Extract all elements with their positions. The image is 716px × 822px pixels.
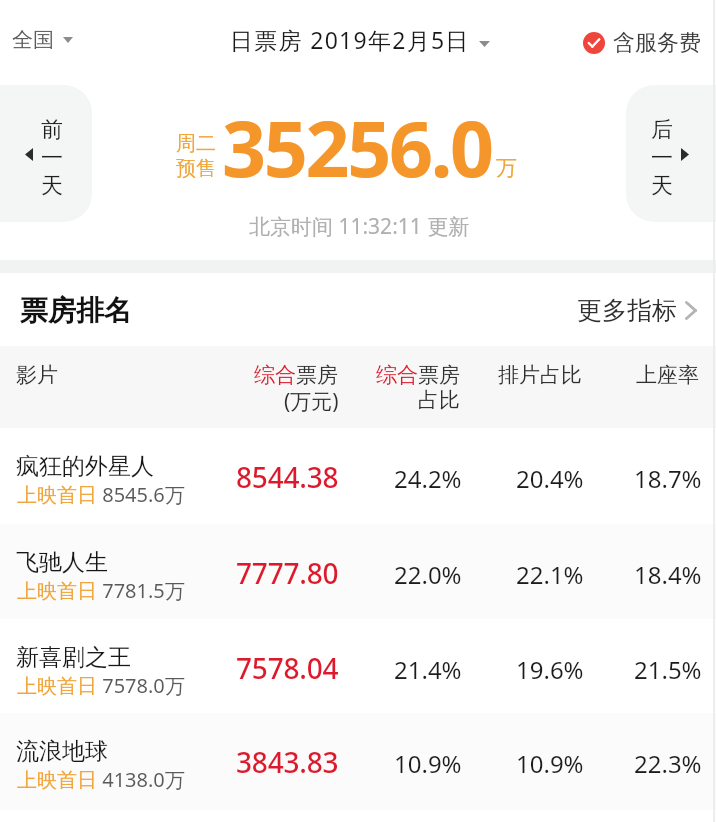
staticText: 天: [651, 172, 673, 200]
staticText: 22.1%: [516, 558, 584, 591]
staticText: 10.9%: [394, 747, 462, 780]
button[interactable]: 更多指标: [565, 285, 709, 336]
staticText: 上映首日 7578.0万: [17, 672, 185, 699]
staticText: 日票房 2019年2月5日: [230, 24, 470, 55]
staticText: 18.7%: [634, 462, 702, 495]
staticText: 7777.80: [236, 554, 339, 592]
staticText: 24.2%: [394, 462, 462, 495]
staticText: 22.3%: [634, 747, 702, 780]
staticText: 3843.83: [236, 743, 339, 781]
staticText: 前: [41, 116, 63, 144]
button[interactable]: 全国: [0, 0, 83, 74]
staticText: 10.9%: [516, 747, 584, 780]
staticText: (万元): [284, 387, 339, 416]
staticText: 后: [651, 116, 673, 144]
staticText: 周二: [176, 131, 216, 156]
staticText: 21.4%: [394, 653, 462, 686]
staticText: 19.6%: [516, 653, 584, 686]
staticText: 22.0%: [394, 558, 462, 591]
button[interactable]: 疯狂的外星人: [0, 428, 716, 524]
staticText: 疯狂的外星人: [16, 452, 154, 481]
staticText: 21.5%: [634, 653, 702, 686]
staticText: 上映首日 8545.6万: [17, 481, 185, 508]
staticText: 预售: [176, 156, 216, 181]
staticText: 排片占比: [498, 362, 582, 388]
button[interactable]: 票房排名: [7, 284, 145, 337]
button[interactable]: 含服务费: [571, 17, 713, 69]
button[interactable]: 流浪地球: [0, 713, 716, 811]
staticText: 天: [41, 172, 63, 200]
button[interactable]: 日票房 2019年2月5日: [218, 12, 502, 67]
button[interactable]: 飞驰人生: [0, 524, 716, 619]
staticText: 上映首日 7781.5万: [17, 577, 185, 604]
staticText: 35256.0: [222, 95, 492, 200]
staticText: 北京时间 11:32:11 更新: [249, 212, 470, 241]
staticText: 含服务费: [613, 29, 701, 57]
staticText: 8544.38: [236, 458, 339, 496]
staticText: 万: [496, 155, 517, 181]
staticText: 上映首日 4138.0万: [17, 766, 185, 793]
staticText: 流浪地球: [16, 737, 108, 766]
button[interactable]: 前一天: [0, 85, 92, 222]
staticText: 新喜剧之王: [16, 643, 131, 672]
staticText: 一: [41, 144, 63, 172]
staticText: 综合票房: [254, 362, 338, 388]
staticText: 综合票房: [376, 362, 460, 388]
staticText: 一: [651, 144, 673, 172]
staticText: 占比: [418, 387, 460, 413]
button[interactable]: 新喜剧之王: [0, 619, 716, 713]
staticText: 票房排名: [20, 293, 132, 328]
staticText: 全国: [12, 27, 54, 53]
staticText: 上座率: [636, 362, 699, 388]
staticText: 飞驰人生: [16, 548, 108, 577]
button[interactable]: 后一天: [626, 85, 716, 222]
staticText: 20.4%: [516, 462, 584, 495]
staticText: 18.4%: [634, 558, 702, 591]
staticText: 7578.04: [236, 649, 339, 687]
staticText: 影片: [16, 362, 58, 388]
staticText: 更多指标: [577, 295, 677, 326]
